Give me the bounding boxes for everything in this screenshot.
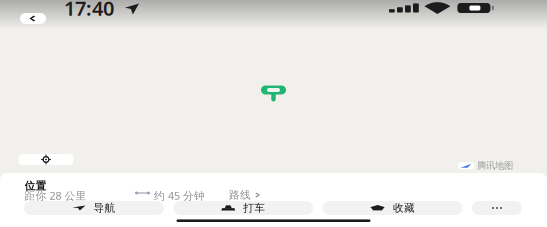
staticText: 路线 (229, 188, 251, 202)
button[interactable]: More options (472, 201, 522, 215)
button[interactable]: Back (20, 13, 46, 24)
staticText: 导航 (93, 201, 115, 214)
button[interactable]: 导航 (24, 201, 164, 215)
staticText: 17:40 (64, 0, 114, 21)
staticText: 打车 (243, 201, 265, 214)
staticText: 距你 28 公里 (24, 188, 86, 203)
staticText: 收藏 (393, 201, 415, 214)
button[interactable]: 打车 (173, 201, 313, 215)
staticText: 位置 (24, 179, 46, 193)
staticText: 约 45 分钟 (154, 188, 205, 203)
button[interactable]: Recenter map (18, 154, 73, 165)
staticText: 腾讯地图 (477, 160, 513, 171)
button[interactable]: 收藏 (322, 201, 462, 215)
